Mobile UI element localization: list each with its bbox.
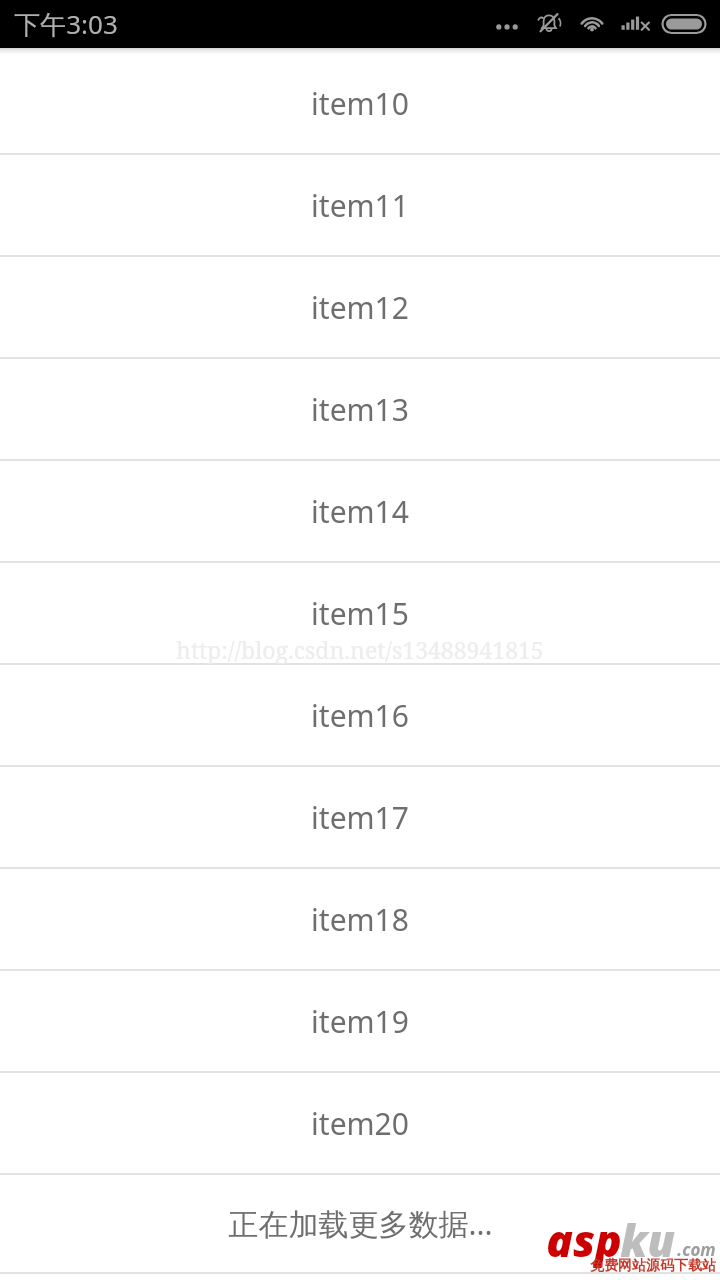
staticText: item20 bbox=[311, 1103, 409, 1144]
staticText: item11 bbox=[311, 185, 409, 226]
button[interactable]: item10 bbox=[0, 54, 720, 153]
staticText: 下午3:03 bbox=[14, 6, 118, 42]
staticText: .com bbox=[677, 1238, 716, 1261]
staticText: http://blog.csdn.net/s13488941815 bbox=[176, 634, 544, 664]
button[interactable]: item13 bbox=[0, 359, 720, 459]
button[interactable]: item19 bbox=[0, 971, 720, 1071]
button[interactable]: item17 bbox=[0, 767, 720, 867]
staticText: item16 bbox=[311, 695, 409, 736]
button[interactable]: item15 bbox=[0, 563, 720, 663]
button[interactable]: item18 bbox=[0, 869, 720, 969]
staticText: ku bbox=[620, 1210, 675, 1270]
staticText: item14 bbox=[311, 491, 409, 532]
staticText: asp bbox=[546, 1210, 622, 1270]
staticText: item10 bbox=[311, 83, 409, 124]
staticText: 正在加载更多数据... bbox=[228, 1203, 493, 1244]
button[interactable]: item12 bbox=[0, 257, 720, 357]
button[interactable]: item14 bbox=[0, 461, 720, 561]
button[interactable]: item20 bbox=[0, 1073, 720, 1173]
staticText: 免费网站源码下载站 bbox=[590, 1257, 716, 1275]
button[interactable]: 正在加载更多数据... bbox=[0, 1175, 720, 1272]
staticText: item17 bbox=[311, 797, 409, 838]
staticText: item18 bbox=[311, 899, 409, 940]
staticText: item12 bbox=[311, 287, 409, 328]
staticText: item15 bbox=[311, 593, 409, 634]
button[interactable]: item16 bbox=[0, 665, 720, 765]
staticText: item13 bbox=[311, 389, 409, 430]
button[interactable]: item11 bbox=[0, 155, 720, 255]
staticText: item19 bbox=[311, 1001, 409, 1042]
